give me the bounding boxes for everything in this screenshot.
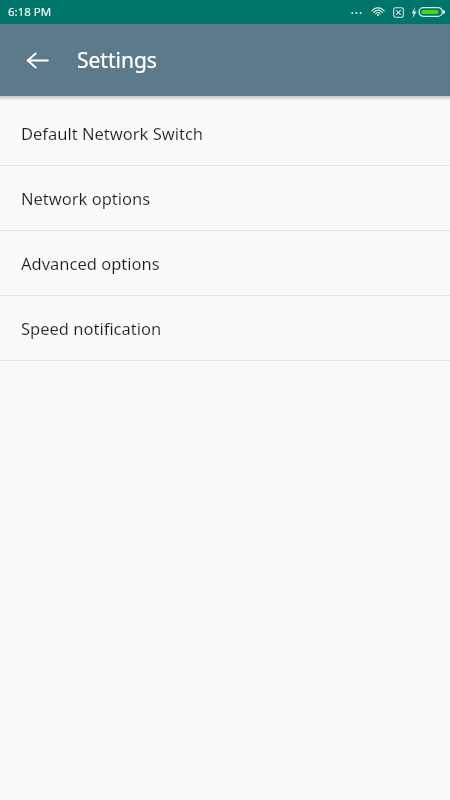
staticText: Speed notification	[21, 317, 162, 339]
staticText: Settings	[77, 46, 157, 75]
button[interactable]: Network options	[0, 166, 450, 230]
button[interactable]: Advanced options	[0, 231, 450, 295]
button[interactable]: Speed notification	[0, 296, 450, 360]
staticText: Default Network Switch	[21, 122, 204, 144]
button[interactable]: Default Network Switch	[0, 101, 450, 165]
button[interactable]: Back	[13, 36, 61, 84]
staticText: Network options	[21, 187, 151, 209]
staticText: Advanced options	[21, 252, 160, 274]
staticText: 6:18 PM	[8, 4, 52, 20]
